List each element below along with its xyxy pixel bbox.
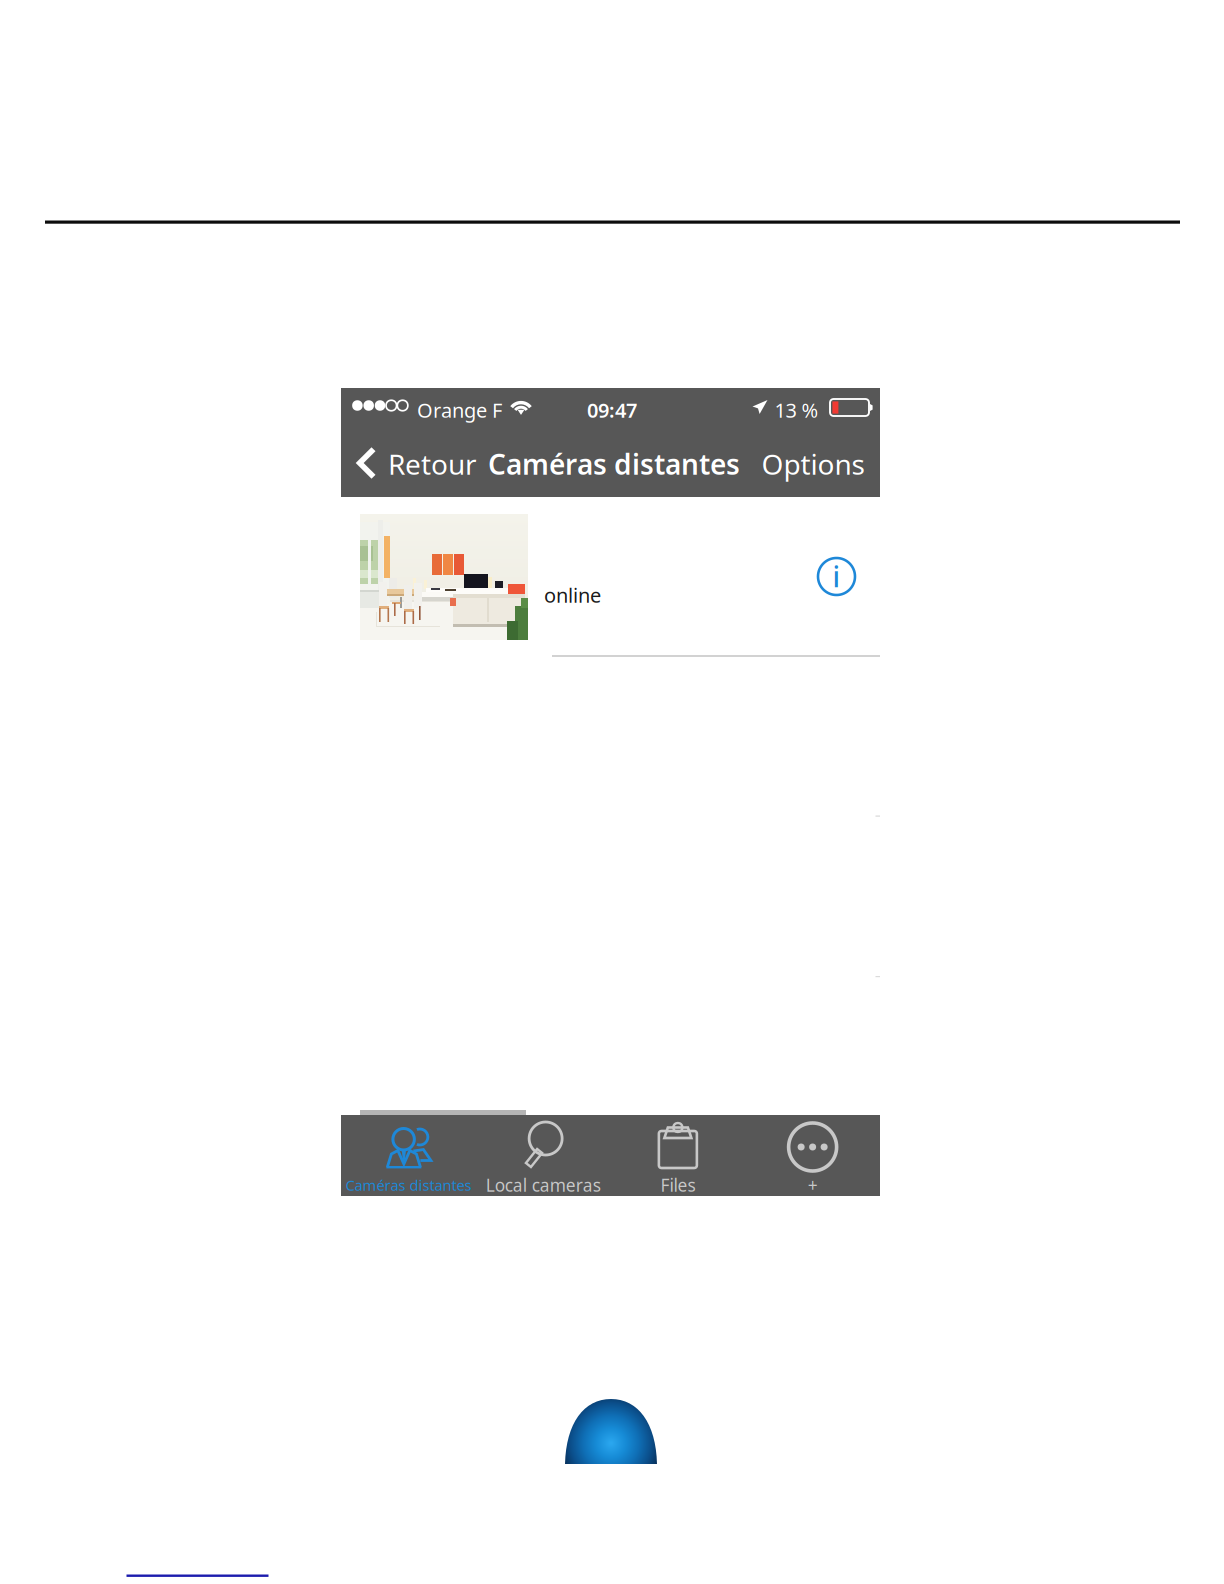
staticText: + [808, 1173, 818, 1196]
staticText: Retour [388, 445, 477, 483]
staticText: Caméras distantes [345, 1175, 471, 1195]
staticText: i [832, 558, 840, 595]
button[interactable]: Retour [347, 433, 484, 497]
button[interactable]: Options [754, 433, 880, 497]
staticText: online [544, 582, 601, 608]
staticText: Orange F [417, 397, 502, 423]
button[interactable]: Files [610, 1115, 745, 1196]
button[interactable]: Info [812, 552, 861, 601]
button[interactable]: Caméras distantes [341, 1115, 476, 1196]
button[interactable]: online [341, 500, 807, 657]
staticText: Files [660, 1173, 695, 1196]
staticText: Caméras distantes [488, 445, 740, 483]
button[interactable]: Local cameras [476, 1115, 611, 1196]
staticText: 09:47 [587, 397, 637, 423]
button[interactable]: + [745, 1115, 880, 1196]
staticText: Local cameras [486, 1173, 601, 1196]
staticText: 13 % [774, 397, 818, 423]
staticText: Options [761, 445, 864, 483]
